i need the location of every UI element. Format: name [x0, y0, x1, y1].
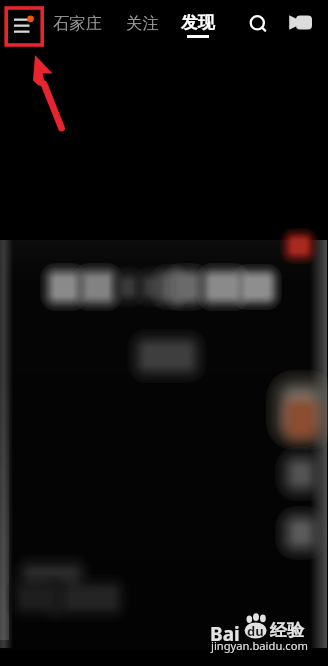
staticText: 石家庄 — [53, 13, 102, 34]
staticText: 经验 — [270, 620, 304, 641]
staticText: Bai — [210, 621, 240, 647]
staticText: du — [247, 622, 264, 640]
button[interactable]: Menu — [13, 14, 35, 36]
button[interactable]: Live camera — [285, 8, 315, 38]
staticText: 关注 — [126, 13, 159, 34]
button[interactable]: 发现 — [174, 0, 222, 50]
button[interactable]: Search — [245, 9, 273, 37]
button[interactable]: 关注 — [119, 0, 166, 50]
button[interactable]: 石家庄 — [46, 0, 109, 50]
staticText: 发现 — [181, 12, 215, 33]
staticText: jingyan.baidu.com — [211, 638, 308, 653]
